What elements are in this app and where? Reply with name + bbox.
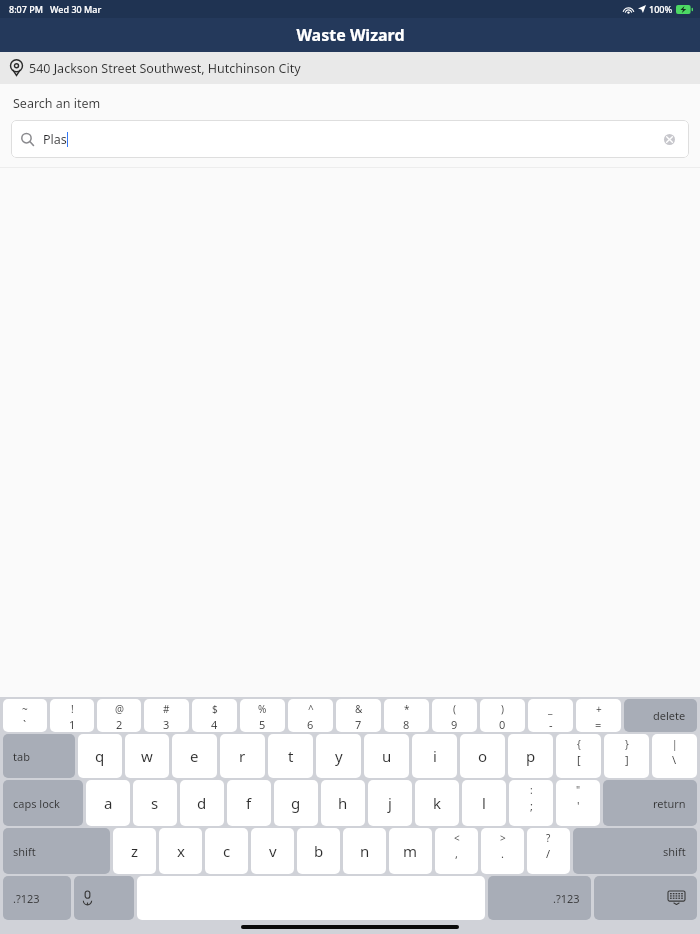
button[interactable]: y	[316, 734, 361, 778]
button[interactable]: |	[652, 734, 697, 778]
button[interactable]: <	[435, 828, 478, 874]
staticText: Wed 30 Mar	[50, 3, 102, 15]
button[interactable]: m	[389, 828, 432, 874]
button[interactable]: b	[297, 828, 340, 874]
button[interactable]: f	[227, 780, 271, 826]
button[interactable]: Hide keyboard	[594, 876, 697, 920]
button[interactable]: Plas	[11, 120, 689, 158]
staticText: 2	[116, 717, 123, 732]
button[interactable]: l	[462, 780, 506, 826]
staticText: $	[212, 702, 218, 716]
button[interactable]: }	[604, 734, 649, 778]
button[interactable]: o	[460, 734, 505, 778]
button[interactable]: tab	[3, 734, 75, 778]
staticText: 9	[451, 717, 458, 732]
staticText: ^	[308, 702, 314, 716]
button[interactable]: p	[508, 734, 553, 778]
button[interactable]: @	[97, 699, 141, 732]
button[interactable]: return	[603, 780, 697, 826]
button[interactable]: i	[412, 734, 457, 778]
button[interactable]: k	[415, 780, 459, 826]
staticText: ,	[455, 846, 458, 861]
button[interactable]: .?123	[488, 876, 591, 920]
staticText: 6	[307, 717, 314, 732]
staticText: c	[223, 841, 231, 861]
staticText: 3	[163, 717, 170, 732]
button[interactable]: g	[274, 780, 318, 826]
button[interactable]: _	[528, 699, 573, 732]
staticText: Waste Wizard	[296, 24, 405, 46]
staticText: )	[501, 702, 504, 716]
staticText: |	[672, 737, 678, 751]
staticText: i	[433, 746, 437, 766]
staticText: *	[404, 702, 410, 716]
button[interactable]: %	[240, 699, 285, 732]
staticText: !	[71, 702, 74, 716]
button[interactable]: h	[321, 780, 365, 826]
button[interactable]: n	[343, 828, 386, 874]
staticText: 540 Jackson Street Southwest, Hutchinson…	[29, 60, 301, 77]
staticText: tab	[13, 749, 30, 764]
button[interactable]: ?	[527, 828, 570, 874]
staticText: %	[258, 702, 267, 716]
button[interactable]: shift	[573, 828, 697, 874]
button[interactable]: #	[144, 699, 189, 732]
button[interactable]: ^	[288, 699, 333, 732]
button[interactable]: a	[86, 780, 130, 826]
staticText: k	[433, 793, 442, 813]
button[interactable]: "	[556, 780, 600, 826]
button[interactable]: z	[113, 828, 156, 874]
staticText: 100%	[649, 3, 673, 15]
staticText: caps lock	[13, 796, 60, 811]
button[interactable]: Clear search	[659, 129, 679, 149]
staticText: "	[576, 783, 581, 797]
button[interactable]: Dictate	[74, 876, 134, 920]
staticText: delete	[653, 708, 686, 723]
staticText: m	[403, 841, 418, 861]
button[interactable]: delete	[624, 699, 697, 732]
staticText: 0	[499, 717, 506, 732]
button[interactable]: +	[576, 699, 621, 732]
button[interactable]: w	[125, 734, 169, 778]
button[interactable]: j	[368, 780, 412, 826]
button[interactable]: !	[50, 699, 94, 732]
button[interactable]: e	[172, 734, 217, 778]
button[interactable]: {	[556, 734, 601, 778]
staticText: j	[388, 793, 392, 813]
button[interactable]: &	[336, 699, 381, 732]
button[interactable]: d	[180, 780, 224, 826]
button[interactable]: s	[133, 780, 177, 826]
staticText: .?123	[13, 891, 40, 906]
staticText: Plas	[43, 131, 67, 148]
button[interactable]: q	[78, 734, 122, 778]
staticText: <	[454, 831, 460, 845]
button[interactable]: u	[364, 734, 409, 778]
button[interactable]: t	[268, 734, 313, 778]
staticText: y	[335, 746, 343, 766]
staticText: e	[190, 746, 199, 766]
staticText: /	[546, 846, 551, 861]
staticText: >	[500, 831, 506, 845]
button[interactable]: r	[220, 734, 265, 778]
button[interactable]: shift	[3, 828, 110, 874]
staticText: ]	[625, 752, 629, 767]
button[interactable]: )	[480, 699, 525, 732]
staticText: =	[595, 717, 602, 732]
button[interactable]: caps lock	[3, 780, 83, 826]
button[interactable]: c	[205, 828, 248, 874]
staticText: p	[526, 746, 536, 766]
button[interactable]: (	[432, 699, 477, 732]
button[interactable]: 540 Jackson Street Southwest, Hutchinson…	[0, 52, 700, 84]
staticText: x	[177, 841, 185, 861]
button[interactable]: ~	[3, 699, 47, 732]
button[interactable]: *	[384, 699, 429, 732]
button[interactable]: .?123	[3, 876, 71, 920]
button[interactable]: >	[481, 828, 524, 874]
button[interactable]: x	[159, 828, 202, 874]
button[interactable]: v	[251, 828, 294, 874]
staticText: r	[239, 746, 246, 766]
button[interactable]: $	[192, 699, 237, 732]
staticText: shift	[13, 844, 36, 859]
button[interactable]: :	[509, 780, 553, 826]
